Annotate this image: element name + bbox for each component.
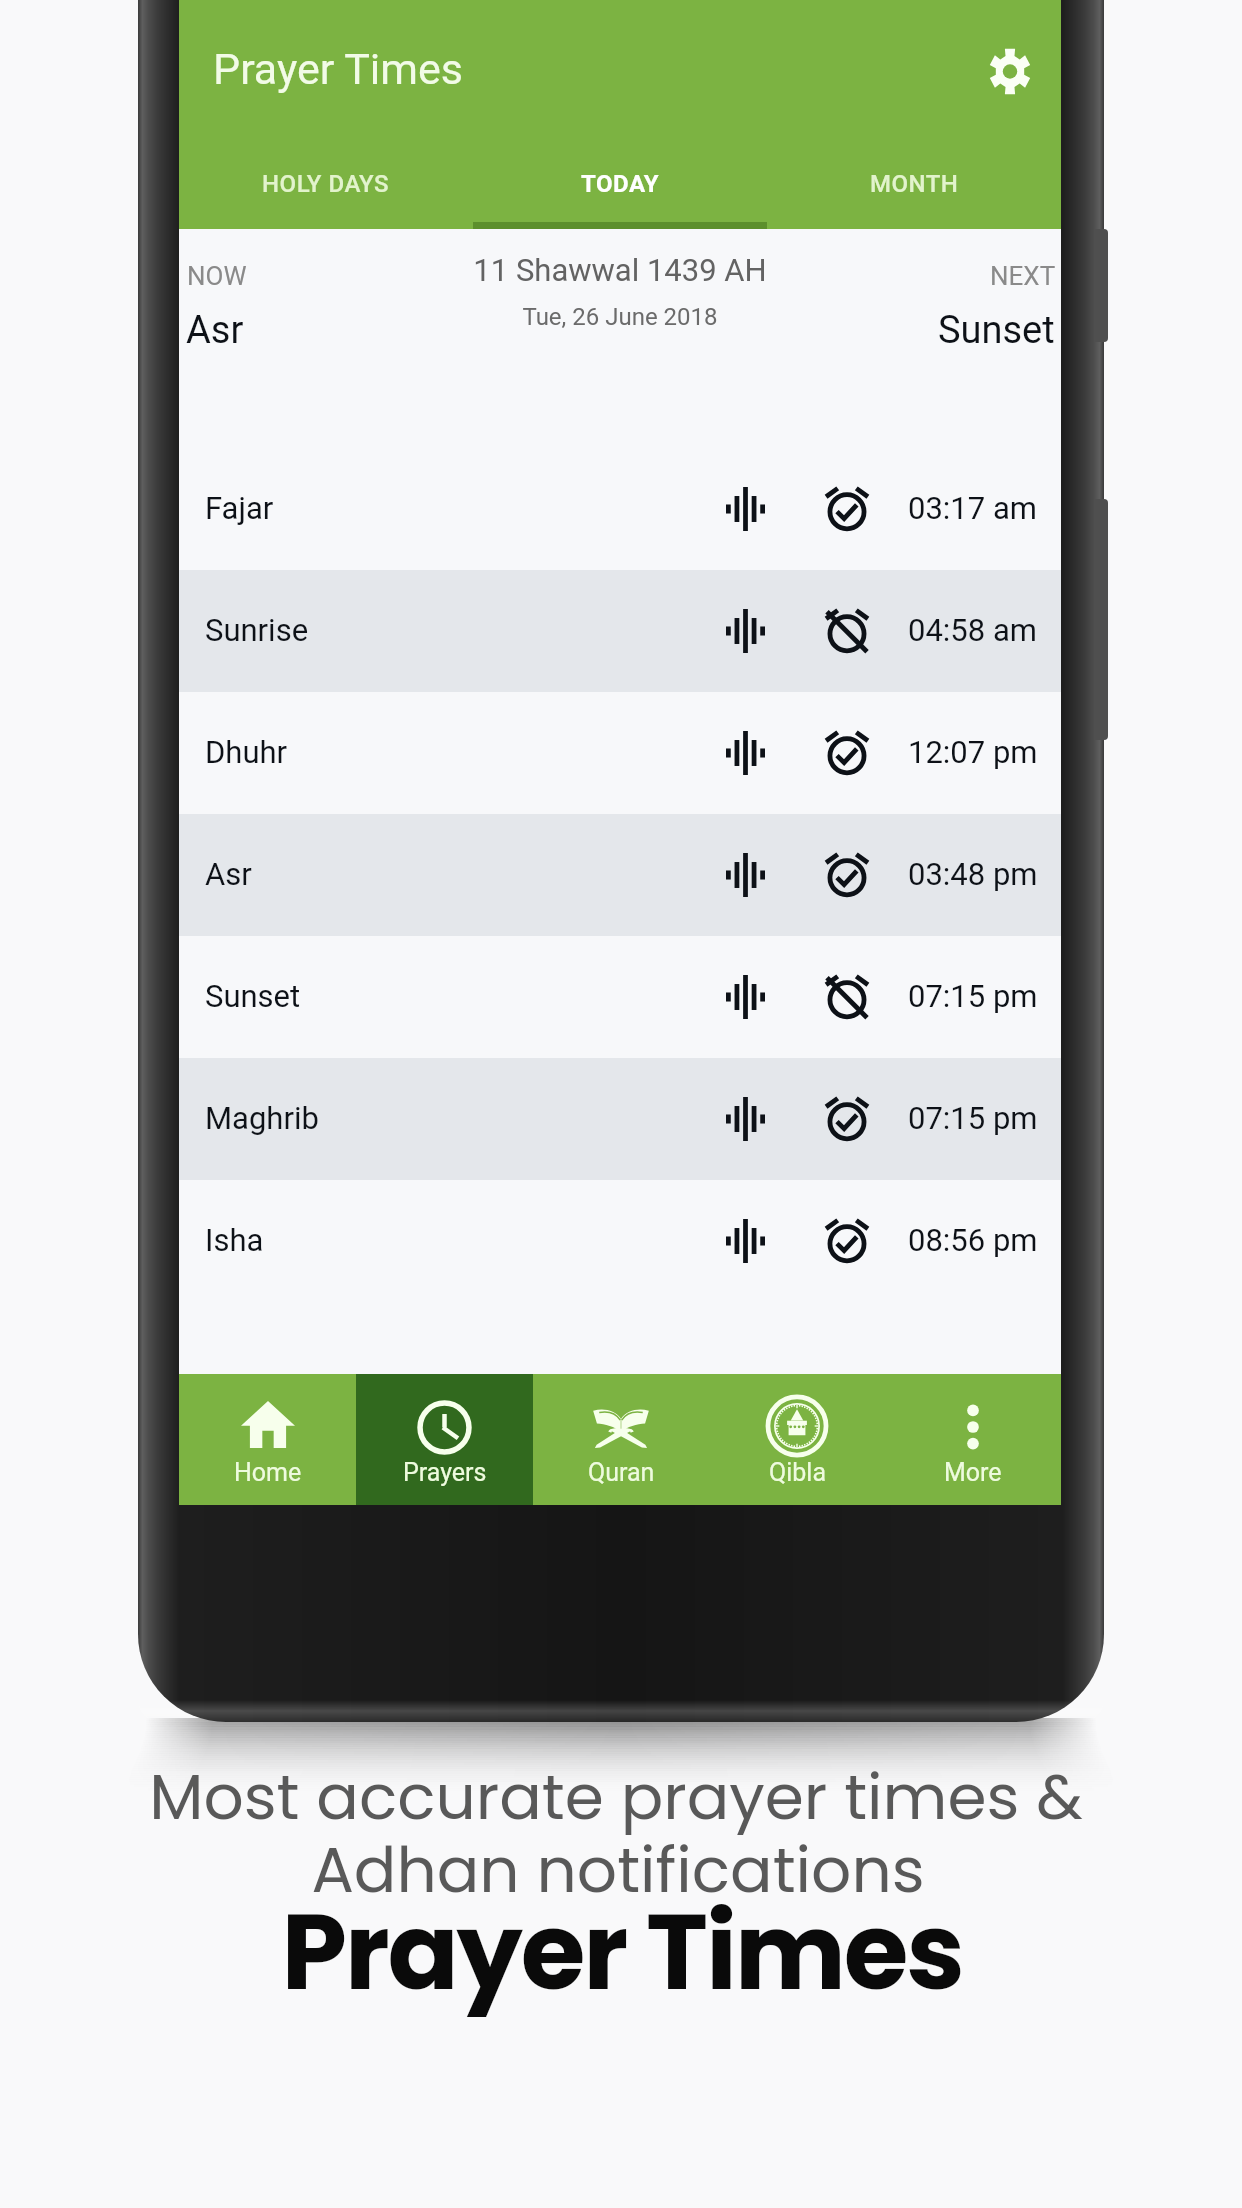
staticText: NOW [187, 261, 247, 291]
button[interactable]: Alarm on [807, 835, 887, 915]
staticText: Sunset [938, 308, 1055, 353]
button[interactable]: Sunrise [179, 570, 1061, 692]
staticText: Adhan notifications [311, 1826, 925, 1914]
staticText: Dhuhr [205, 734, 288, 770]
staticText: 07:15 pm [908, 978, 1038, 1014]
button[interactable]: Isha [179, 1180, 1061, 1302]
staticText: 11 Shawwal 1439 AH [473, 252, 767, 288]
button[interactable]: Adhan sound [705, 1201, 785, 1281]
staticText: Most accurate prayer times & [149, 1753, 1083, 1841]
staticText: Quran [588, 1458, 655, 1487]
button[interactable]: Adhan sound [705, 957, 785, 1037]
button[interactable]: Alarm on [807, 1201, 887, 1281]
staticText: 03:48 pm [908, 856, 1038, 892]
button[interactable]: Home [179, 1374, 356, 1505]
staticText: Qibla [769, 1458, 826, 1487]
button[interactable]: Sunset [179, 936, 1061, 1058]
staticText: Sunrise [205, 612, 309, 648]
staticText: Prayers [403, 1458, 487, 1487]
button[interactable]: Asr [179, 814, 1061, 936]
button[interactable]: Quran [533, 1374, 709, 1505]
staticText: Tue, 26 June 2018 [522, 303, 718, 331]
button[interactable]: Adhan sound [705, 1079, 785, 1159]
staticText: Sunset [205, 978, 301, 1014]
staticText: Isha [205, 1222, 264, 1258]
staticText: Home [234, 1458, 302, 1487]
staticText: TODAY [581, 170, 660, 198]
button[interactable]: Alarm on [807, 469, 887, 549]
staticText: Maghrib [205, 1100, 319, 1136]
button[interactable]: Settings [955, 16, 1065, 126]
staticText: Prayer Times [281, 1879, 963, 2026]
button[interactable]: Alarm on [807, 713, 887, 793]
staticText: HOLY DAYS [262, 170, 390, 198]
staticText: Asr [186, 308, 244, 353]
button[interactable]: Alarm on [807, 1079, 887, 1159]
button[interactable]: Adhan sound [705, 469, 785, 549]
staticText: Prayer Times [213, 44, 464, 94]
button[interactable]: Alarm off [807, 591, 887, 671]
staticText: Asr [205, 856, 252, 892]
button[interactable]: HOLY DAYS [179, 144, 473, 223]
button[interactable]: MONTH [767, 144, 1061, 223]
button[interactable]: Alarm off [807, 957, 887, 1037]
staticText: More [944, 1458, 1002, 1487]
button[interactable]: Adhan sound [705, 591, 785, 671]
button[interactable]: Maghrib [179, 1058, 1061, 1180]
button[interactable]: TODAY [473, 144, 767, 223]
button[interactable]: More [885, 1374, 1061, 1505]
button[interactable]: Fajar [179, 448, 1061, 570]
staticText: 04:58 am [908, 612, 1037, 648]
button[interactable]: Qibla [709, 1374, 885, 1505]
staticText: 12:07 pm [908, 734, 1038, 770]
staticText: Fajar [205, 490, 274, 526]
staticText: MONTH [870, 170, 959, 198]
staticText: NEXT [990, 261, 1056, 291]
button[interactable]: Adhan sound [705, 713, 785, 793]
staticText: 08:56 pm [908, 1222, 1038, 1258]
staticText: 03:17 am [908, 490, 1037, 526]
button[interactable]: Dhuhr [179, 692, 1061, 814]
button[interactable]: Adhan sound [705, 835, 785, 915]
button[interactable]: Prayers [356, 1374, 533, 1505]
staticText: 07:15 pm [908, 1100, 1038, 1136]
